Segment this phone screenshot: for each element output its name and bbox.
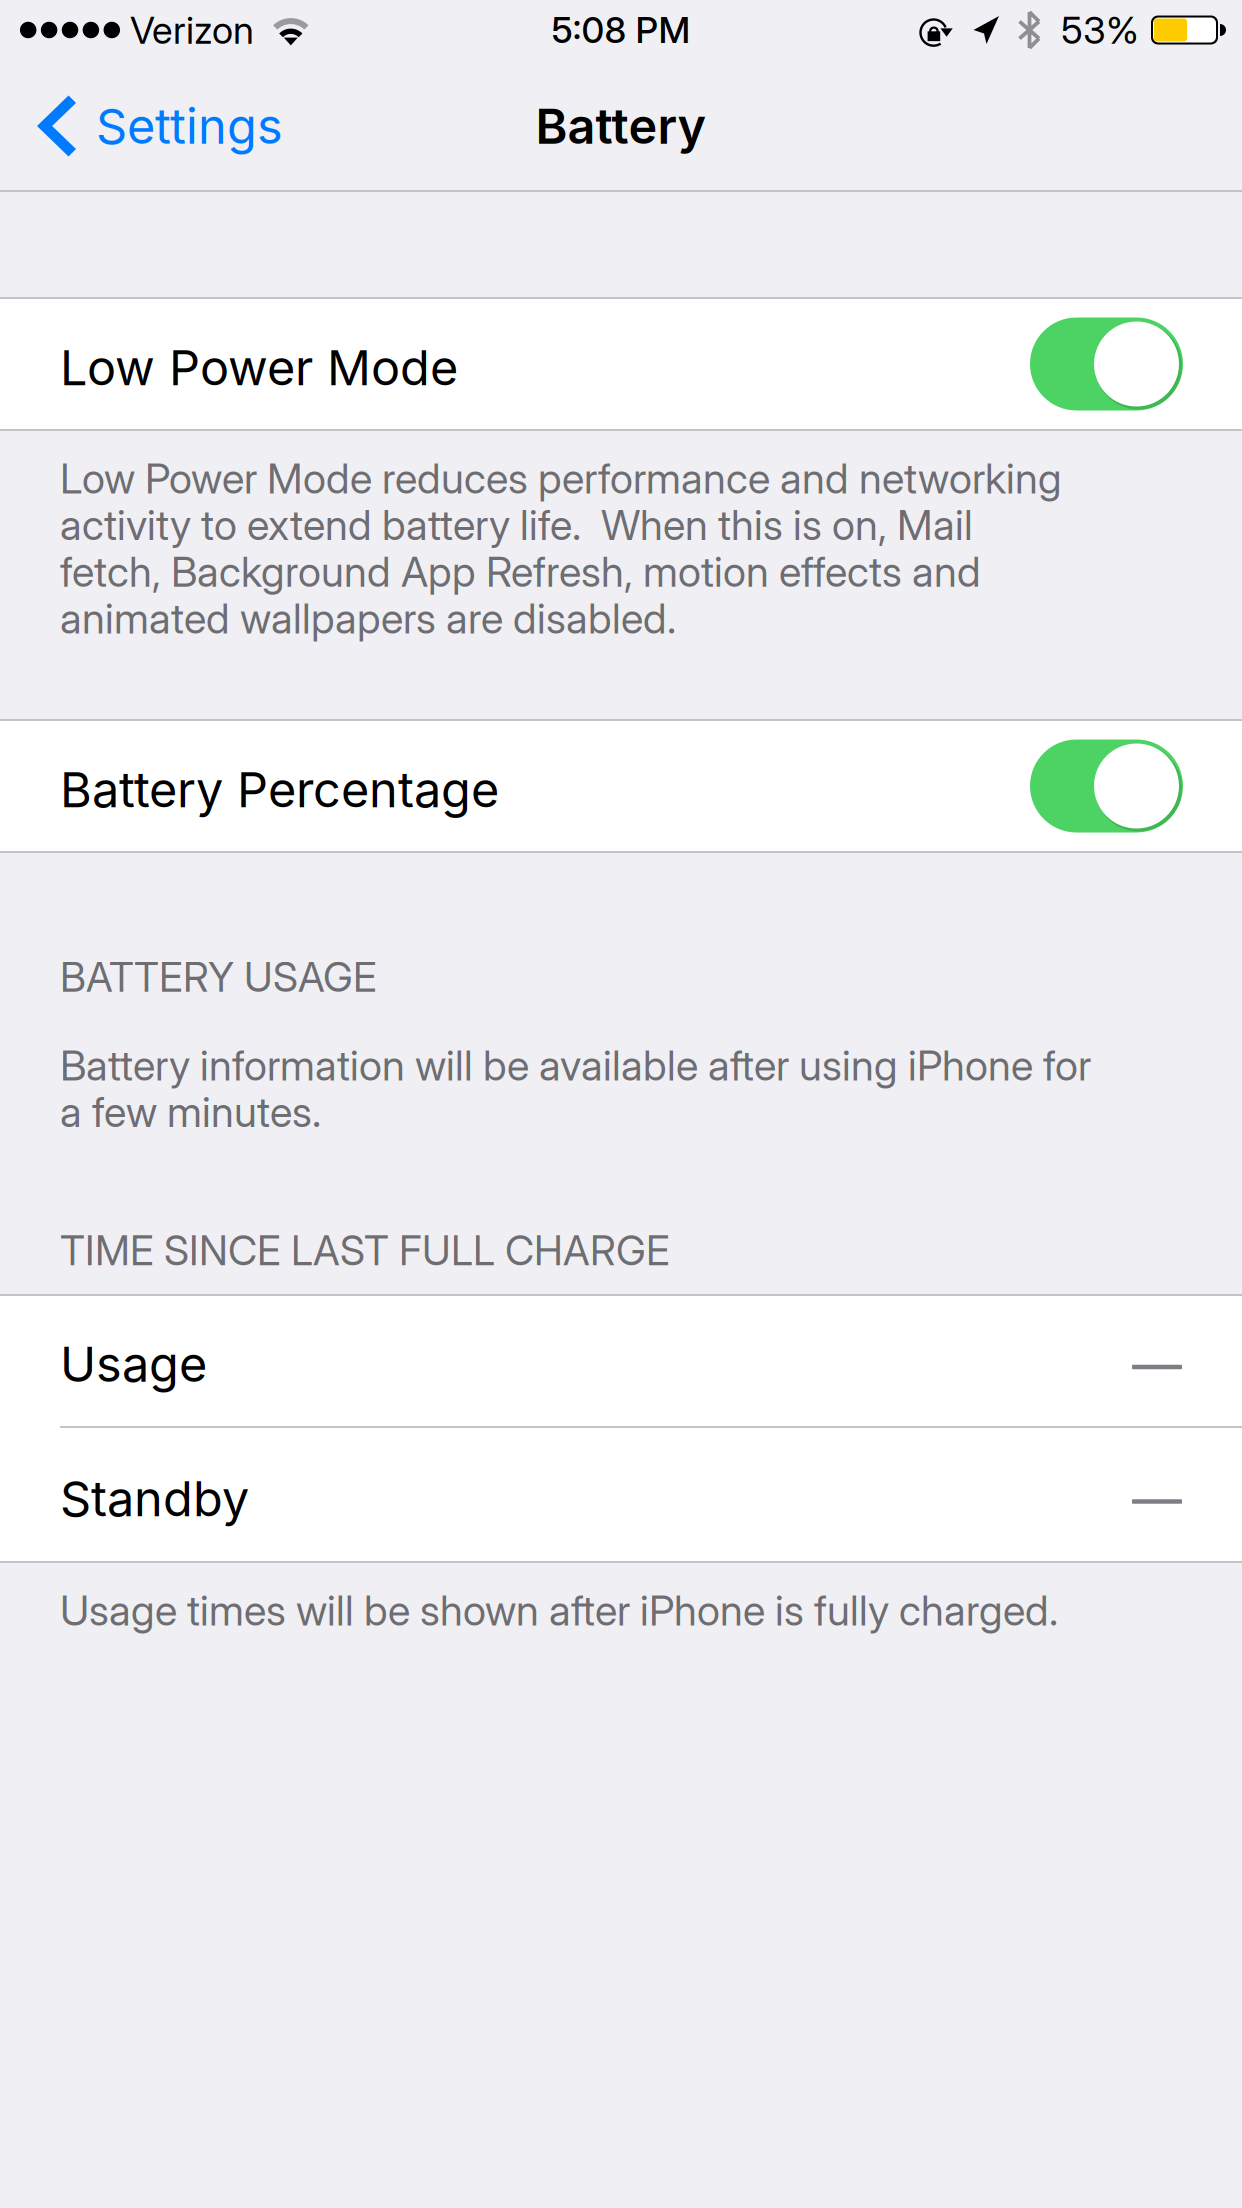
button[interactable]: Standby <box>0 1428 1242 1563</box>
staticText: Battery Percentage <box>60 760 499 819</box>
staticText: a few minutes. <box>60 1087 321 1137</box>
staticText: TIME SINCE LAST FULL CHARGE <box>60 1226 670 1275</box>
staticText: Battery information will be available af… <box>60 1040 1091 1090</box>
staticText: Low Power Mode reduces performance and n… <box>60 453 1062 503</box>
staticText: Verizon <box>130 7 254 53</box>
button[interactable]: Usage <box>0 1294 1242 1428</box>
staticText: Usage <box>60 1335 207 1393</box>
staticText: fetch, Background App Refresh, motion ef… <box>60 547 981 597</box>
staticText: BATTERY USAGE <box>60 952 377 1001</box>
staticText: 53% <box>1061 7 1139 53</box>
button[interactable]: Low Power Mode <box>0 297 1242 431</box>
staticText: 5:08 PM <box>551 8 690 52</box>
staticText: activity to extend battery life. When th… <box>60 500 973 550</box>
staticText: Usage times will be shown after iPhone i… <box>60 1585 1058 1635</box>
button[interactable]: Battery Percentage <box>0 719 1242 853</box>
staticText: Battery <box>535 97 706 155</box>
staticText: Low Power Mode <box>60 338 458 397</box>
staticText: animated wallpapers are disabled. <box>60 593 676 643</box>
staticText: Settings <box>96 97 283 155</box>
staticText: Standby <box>60 1469 249 1528</box>
button[interactable]: Settings <box>0 60 309 192</box>
